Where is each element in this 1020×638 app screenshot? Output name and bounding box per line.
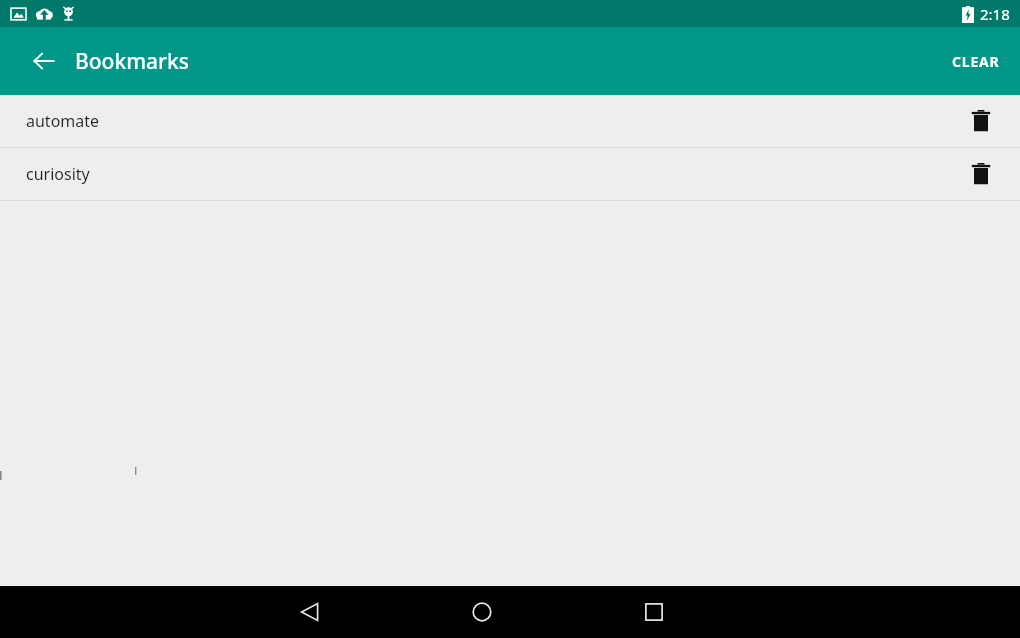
button[interactable]: automate	[0, 95, 1020, 147]
button[interactable]: curiosity	[0, 148, 1020, 200]
staticText: automate	[26, 110, 100, 132]
staticText: CLEAR	[952, 52, 1000, 71]
button[interactable]: Back	[20, 37, 68, 85]
staticText: curiosity	[26, 163, 90, 185]
button[interactable]: Back	[284, 586, 336, 638]
staticText: 2:18	[980, 4, 1010, 24]
button[interactable]: Delete automate	[955, 95, 1007, 147]
button[interactable]: CLEAR	[932, 27, 1020, 95]
button[interactable]: Home	[456, 586, 508, 638]
button[interactable]: Delete curiosity	[955, 148, 1007, 200]
button[interactable]: Recent apps	[628, 586, 680, 638]
staticText: Bookmarks	[75, 47, 189, 76]
